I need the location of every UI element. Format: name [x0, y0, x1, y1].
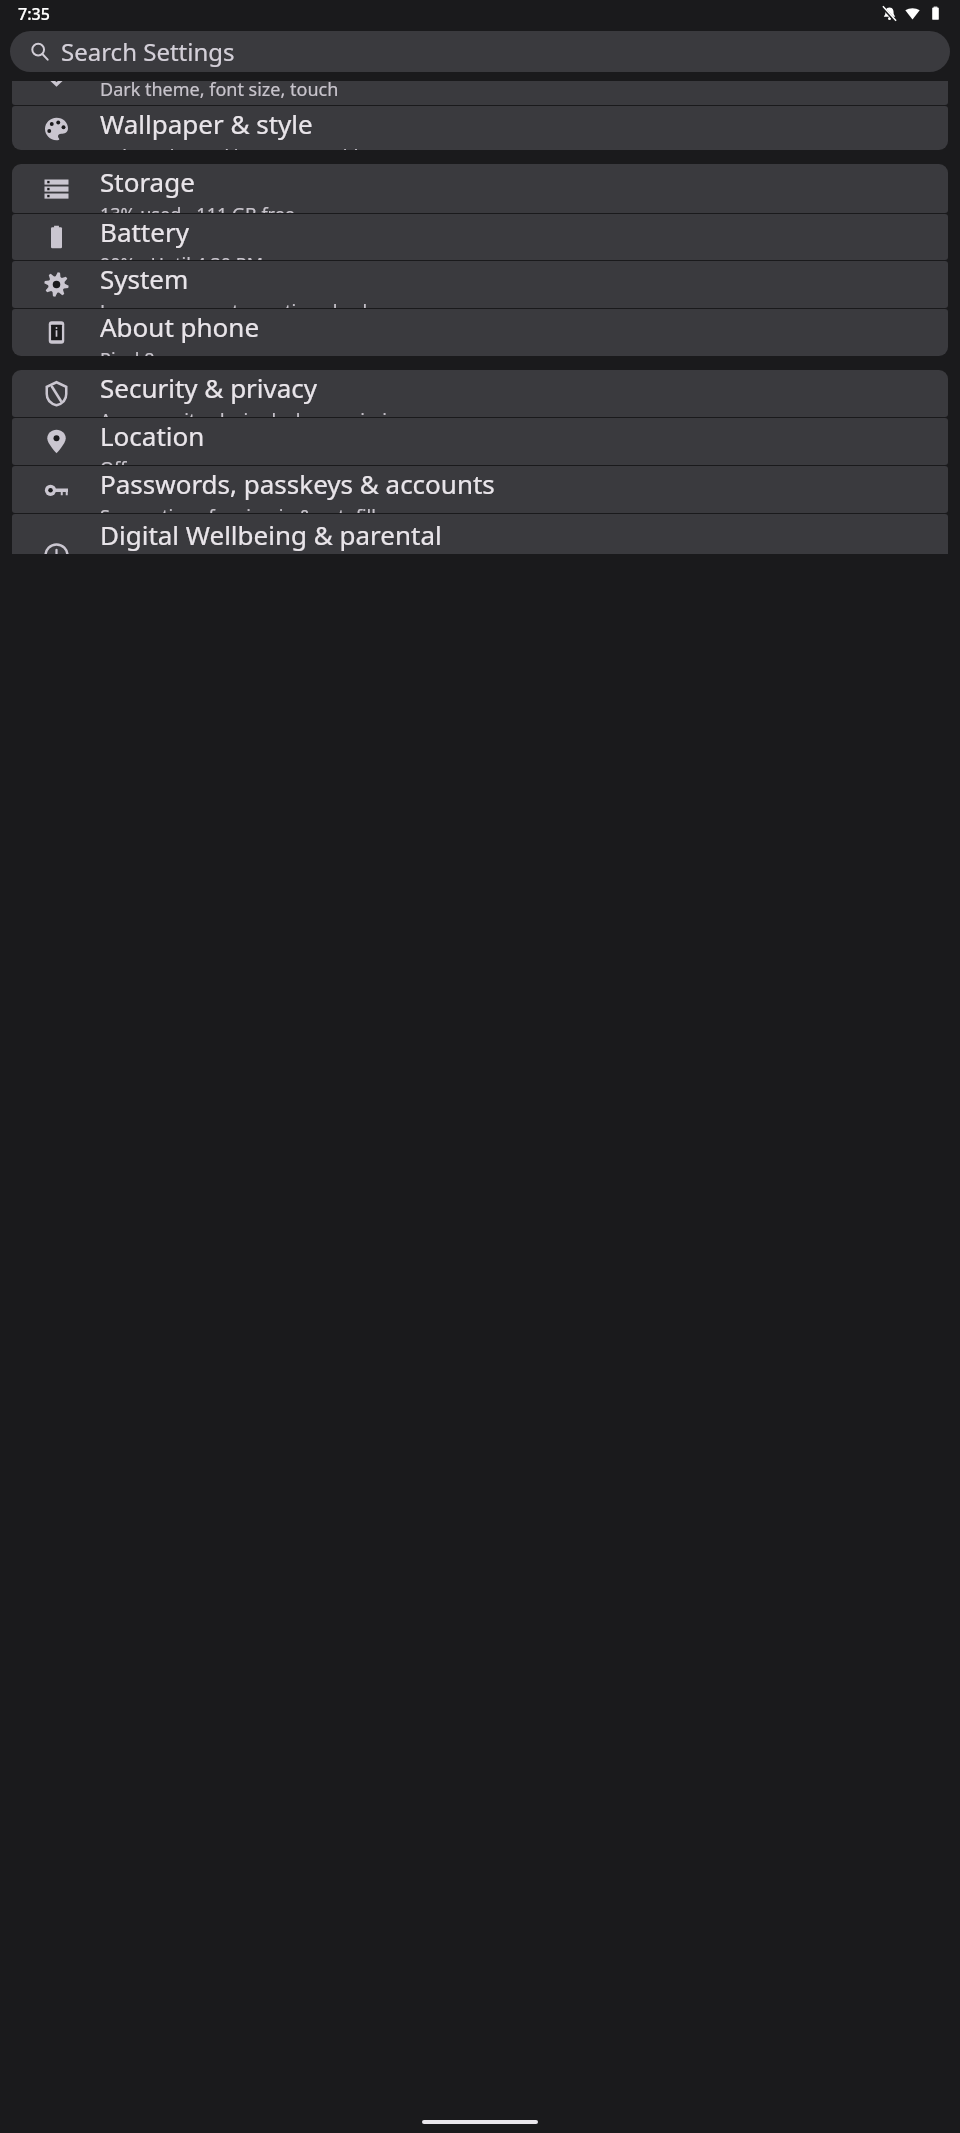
button[interactable]: Security & privacy	[12, 370, 948, 417]
button[interactable]: Wallpaper & style	[12, 106, 948, 150]
staticText: Security & privacy	[100, 370, 318, 405]
button[interactable]: Search Settings	[10, 31, 950, 72]
staticText: Suggestions for sign-in & autofill	[100, 504, 376, 513]
button[interactable]: Digital Wellbeing & parental	[12, 514, 948, 554]
staticText: Off	[100, 456, 127, 465]
staticText: Languages, gestures, time, backup	[100, 299, 395, 308]
staticText: Wallpaper & style	[100, 106, 313, 141]
button[interactable]: Battery	[12, 214, 948, 260]
staticText: Passwords, passkeys & accounts	[100, 466, 495, 501]
staticText: 90% - Until 4:30 PM	[100, 252, 264, 260]
staticText: 7:35	[18, 3, 50, 25]
staticText: About phone	[100, 309, 260, 344]
staticText: Colors, themed icons, app grid	[100, 144, 359, 150]
staticText: Storage	[100, 164, 195, 199]
button[interactable]: Passwords, passkeys & accounts	[12, 466, 948, 513]
staticText: Location	[100, 418, 205, 453]
other: Wi-Fi	[905, 6, 920, 21]
staticText: Battery	[100, 214, 189, 249]
staticText: Dark theme, font size, touch	[100, 81, 339, 101]
button[interactable]: System	[12, 261, 948, 308]
staticText: Pixel 8a	[100, 347, 165, 356]
other: Battery	[928, 6, 943, 21]
staticText: 13% used - 111 GB free	[100, 202, 295, 213]
staticText: App security, device lock, permissions	[100, 408, 418, 417]
button[interactable]: Location	[12, 418, 948, 465]
button[interactable]: Dark theme, font size, touch	[12, 81, 948, 105]
staticText: System	[100, 261, 189, 296]
staticText: Digital Wellbeing & parental	[100, 517, 442, 552]
button[interactable]: About phone	[12, 309, 948, 356]
button[interactable]: Storage	[12, 164, 948, 213]
other: Ringer muted	[882, 6, 897, 21]
staticText: Search Settings	[61, 35, 235, 68]
